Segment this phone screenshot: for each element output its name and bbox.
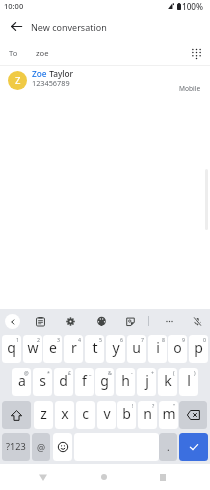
button[interactable]: Clipboard (32, 313, 48, 329)
button[interactable]: w (23, 335, 42, 363)
staticText: 5 (99, 336, 102, 343)
button[interactable]: x (55, 401, 74, 429)
staticText: s (39, 371, 46, 390)
staticText: 6 (120, 336, 123, 343)
staticText: p (194, 338, 203, 357)
staticText: £ (68, 369, 71, 376)
button[interactable]: ?123 (2, 433, 30, 461)
button[interactable]: Microphone off (189, 313, 205, 329)
button[interactable]: z (34, 401, 53, 429)
button[interactable]: Send (179, 433, 208, 461)
staticText: v (103, 404, 111, 423)
button[interactable]: Previous (5, 314, 20, 329)
button[interactable]: r (64, 335, 83, 363)
staticText: ?123 (6, 440, 26, 453)
staticText: ? (152, 402, 155, 409)
staticText: l (187, 371, 191, 390)
button[interactable]: h (116, 368, 135, 396)
staticText: g (100, 371, 109, 390)
button[interactable]: k (158, 368, 177, 396)
staticText: e (49, 338, 57, 357)
button[interactable]: Theme (93, 313, 109, 329)
button[interactable]: . (159, 433, 177, 461)
button[interactable]: i (148, 335, 167, 363)
staticText: @ (24, 369, 29, 376)
staticText: r (71, 338, 77, 357)
button[interactable]: q (2, 335, 21, 363)
staticText: w (27, 338, 39, 357)
staticText: 0 (203, 336, 206, 343)
staticText: ) (194, 369, 196, 376)
staticText: & (108, 369, 112, 376)
staticText: 7 (141, 336, 144, 343)
button[interactable]: @ (32, 433, 50, 461)
button[interactable]: Backspace (179, 401, 207, 429)
staticText: Mobile (179, 84, 201, 93)
button[interactable]: p (189, 335, 208, 363)
button[interactable]: j (137, 368, 156, 396)
button[interactable]: f (75, 368, 94, 396)
button[interactable]: Settings (62, 313, 78, 329)
staticText: @ (37, 441, 46, 453)
staticText: 4 (78, 336, 81, 343)
staticText: i (156, 338, 160, 357)
staticText: 3 (57, 336, 60, 343)
staticText: 123456789 (32, 78, 70, 88)
button[interactable]: a (12, 368, 31, 396)
staticText: k (164, 371, 172, 390)
button[interactable]: o (168, 335, 187, 363)
staticText: c (82, 404, 89, 423)
staticText: Zoe (32, 68, 47, 79)
staticText: 2 (37, 336, 40, 343)
staticText: h (121, 371, 130, 390)
button[interactable]: More options (161, 313, 177, 329)
button[interactable]: n (138, 401, 157, 429)
button[interactable]: u (127, 335, 146, 363)
button[interactable]: y (106, 335, 125, 363)
button[interactable]: b (117, 401, 136, 429)
staticText: + (151, 369, 154, 376)
staticText: zoe (36, 48, 49, 58)
staticText: New conversation (31, 21, 107, 33)
staticText: . (167, 440, 170, 454)
staticText: Taylor (47, 68, 74, 79)
staticText: y (112, 338, 120, 357)
staticText: Z (15, 74, 21, 87)
button[interactable]: d (54, 368, 73, 396)
staticText: o (173, 338, 182, 357)
staticText: a (18, 371, 26, 390)
button[interactable]: c (76, 401, 95, 429)
staticText: b (122, 404, 131, 423)
button[interactable]: Home (94, 467, 114, 487)
button[interactable]: g (95, 368, 114, 396)
button[interactable]: l (179, 368, 198, 396)
staticText: To (9, 48, 18, 58)
button[interactable]: Emoji (53, 433, 72, 461)
staticText: d (59, 371, 68, 390)
button[interactable]: Sticker (122, 313, 138, 329)
button[interactable]: Z (0, 65, 210, 97)
staticText: t (92, 338, 98, 357)
staticText: - (131, 369, 133, 376)
staticText: j (145, 371, 149, 390)
staticText: u (132, 338, 141, 357)
staticText: ! (132, 402, 134, 409)
button[interactable]: Back (2, 12, 30, 40)
button[interactable]: s (33, 368, 52, 396)
staticText: x (61, 404, 69, 423)
button[interactable]: Back (33, 467, 53, 487)
button[interactable]: m (159, 401, 178, 429)
button[interactable]: Recent apps (153, 467, 173, 487)
staticText: 100% (182, 1, 204, 12)
staticText: n (143, 404, 152, 423)
button[interactable]: t (85, 335, 104, 363)
button[interactable]: Dialpad (186, 43, 206, 63)
button[interactable]: e (43, 335, 62, 363)
staticText: " (173, 402, 176, 409)
button[interactable]: Shift (2, 401, 31, 429)
staticText: 1 (16, 336, 19, 343)
staticText: 9 (182, 336, 185, 343)
staticText: f (82, 371, 87, 390)
button[interactable]: v (97, 401, 116, 429)
